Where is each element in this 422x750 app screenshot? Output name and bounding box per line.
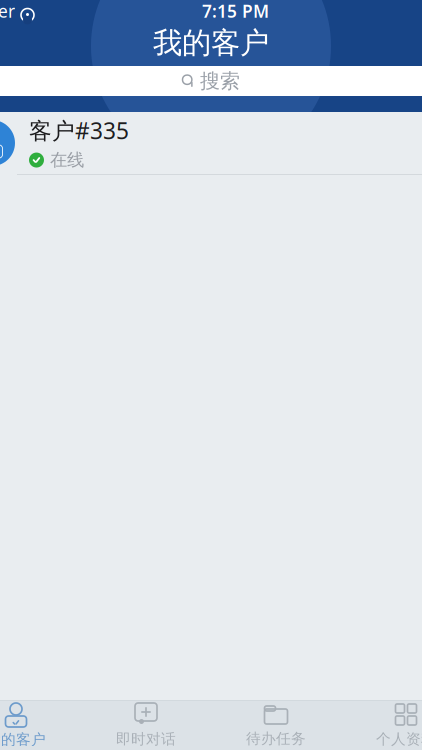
button[interactable]: 个人资料 [341,701,422,749]
button[interactable]: 客户#335 [0,112,422,175]
staticText: 在线 [50,149,84,171]
staticText: 我的客户 [0,730,46,748]
button[interactable]: 我的客户 [0,701,81,749]
staticText: 7:15 PM [202,0,269,22]
staticText: 客户#335 [29,115,129,145]
button[interactable]: 搜索 [0,66,422,96]
staticText: 个人资料 [376,730,422,748]
staticText: 搜索 [200,69,240,93]
button[interactable]: 即时对话 [81,701,211,749]
staticText: 我的客户 [153,25,269,61]
staticText: 即时对话 [116,730,176,748]
button[interactable]: 待办任务 [211,701,341,749]
staticText: Carrier [0,0,15,22]
staticText: 待办任务 [246,729,306,747]
